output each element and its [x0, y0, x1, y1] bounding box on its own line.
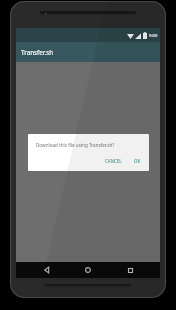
button[interactable]: Back	[36, 262, 58, 278]
staticText: Transfer.sh	[21, 48, 54, 56]
staticText: 9:00	[149, 33, 158, 39]
button[interactable]: Home	[77, 262, 99, 278]
staticText: Download this file using Transfer.sh?	[36, 142, 115, 148]
staticText: CANCEL	[105, 158, 122, 164]
button[interactable]: Recent apps	[119, 262, 141, 278]
button[interactable]: CANCEL	[102, 155, 125, 167]
staticText: OK	[134, 158, 141, 164]
button[interactable]: OK	[131, 155, 144, 167]
